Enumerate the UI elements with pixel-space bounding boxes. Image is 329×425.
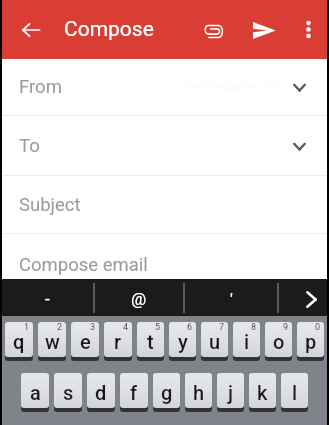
staticText: Compose: [64, 17, 154, 42]
button[interactable]: k: [249, 373, 276, 410]
staticText: l: [292, 381, 298, 404]
staticText: q: [13, 330, 25, 353]
staticText: s: [63, 381, 74, 404]
button[interactable]: w: [38, 322, 66, 359]
button[interactable]: u: [201, 322, 228, 359]
staticText: r: [114, 330, 122, 353]
staticText: 0: [315, 322, 321, 333]
staticText: -: [45, 289, 50, 309]
button[interactable]: More options: [290, 11, 327, 48]
button[interactable]: Send: [242, 9, 285, 52]
staticText: d: [95, 381, 107, 404]
button[interactable]: r: [104, 322, 132, 359]
button[interactable]: t: [137, 322, 164, 359]
staticText: o: [273, 330, 285, 353]
staticText: ': [230, 289, 233, 309]
button[interactable]: Back: [12, 11, 50, 49]
button[interactable]: g: [153, 373, 180, 410]
button[interactable]: s: [54, 373, 82, 410]
button[interactable]: To: [2, 116, 327, 175]
button[interactable]: Attach file: [192, 10, 235, 53]
staticText: To: [19, 135, 40, 157]
staticText: Compose email: [19, 254, 148, 276]
staticText: 8: [251, 322, 257, 333]
button[interactable]: From: [2, 59, 327, 115]
button[interactable]: q: [5, 322, 33, 359]
staticText: e: [80, 330, 91, 353]
staticText: 9: [283, 322, 289, 333]
staticText: 3: [90, 322, 96, 333]
staticText: p: [305, 330, 317, 353]
staticText: @: [131, 289, 147, 309]
button[interactable]: e: [71, 322, 99, 359]
button[interactable]: Next: [279, 279, 327, 316]
button[interactable]: a: [21, 373, 49, 410]
button[interactable]: Expand: [288, 135, 310, 157]
staticText: From: [19, 76, 62, 98]
staticText: k: [257, 381, 268, 404]
button[interactable]: @: [95, 279, 183, 316]
button[interactable]: y: [169, 322, 196, 359]
staticText: u: [209, 330, 221, 353]
button[interactable]: f: [120, 373, 148, 410]
staticText: w: [45, 330, 60, 353]
staticText: 1: [24, 322, 30, 333]
staticText: 5: [155, 322, 161, 333]
button[interactable]: Expand: [288, 76, 310, 98]
button[interactable]: i: [233, 322, 260, 359]
button[interactable]: h: [185, 373, 212, 410]
staticText: j: [228, 381, 234, 404]
staticText: g: [161, 381, 173, 404]
button[interactable]: o: [265, 322, 292, 359]
staticText: a: [30, 381, 41, 404]
staticText: t: [147, 330, 154, 353]
button[interactable]: j: [217, 373, 244, 410]
staticText: h: [193, 381, 205, 404]
staticText: y: [178, 330, 188, 353]
staticText: 2: [57, 322, 63, 333]
staticText: 6: [187, 322, 193, 333]
staticText: i: [244, 330, 250, 353]
button[interactable]: l: [281, 373, 308, 410]
button[interactable]: p: [297, 322, 324, 359]
staticText: f: [130, 381, 138, 404]
staticText: 7: [219, 322, 225, 333]
button[interactable]: Subject: [2, 176, 327, 233]
staticText: Subject: [19, 194, 81, 216]
button[interactable]: -: [2, 279, 93, 316]
staticText: 4: [123, 322, 129, 333]
button[interactable]: ': [185, 279, 277, 316]
button[interactable]: d: [87, 373, 115, 410]
